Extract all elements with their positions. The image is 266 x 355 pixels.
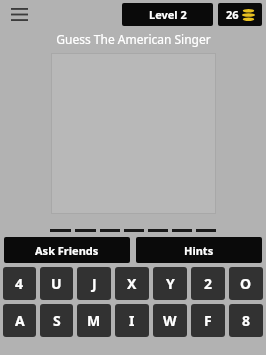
staticText: O xyxy=(240,274,252,293)
button[interactable]: A xyxy=(3,304,36,337)
button[interactable]: S xyxy=(40,304,73,337)
staticText: Level 2 xyxy=(149,7,187,22)
button[interactable]: 2 xyxy=(191,267,225,300)
button[interactable]: Level 2 xyxy=(122,3,213,26)
button[interactable]: Y xyxy=(153,267,187,300)
staticText: X xyxy=(127,274,137,293)
staticText: 2 xyxy=(204,274,213,293)
staticText: M xyxy=(87,311,101,330)
staticText: Guess The American Singer xyxy=(56,31,211,47)
staticText: Y xyxy=(166,274,175,293)
staticText: F xyxy=(204,311,212,330)
staticText: S xyxy=(53,311,61,330)
staticText: 26 xyxy=(226,7,239,22)
staticText: I xyxy=(129,311,135,330)
button[interactable]: I xyxy=(115,304,149,337)
button[interactable]: F xyxy=(191,304,225,337)
staticText: 4 xyxy=(15,274,24,293)
staticText: Hints xyxy=(184,243,214,258)
button[interactable]: Menu xyxy=(6,1,32,27)
staticText: U xyxy=(51,274,62,293)
staticText: W xyxy=(163,311,177,330)
button[interactable]: W xyxy=(153,304,187,337)
button[interactable]: 8 xyxy=(229,304,263,337)
staticText: Ask Friends xyxy=(35,243,99,258)
staticText: 8 xyxy=(242,311,251,330)
button[interactable]: 4 xyxy=(3,267,36,300)
button[interactable]: J xyxy=(77,267,111,300)
button[interactable]: U xyxy=(40,267,73,300)
staticText: A xyxy=(15,311,25,330)
button[interactable]: Ask Friends xyxy=(4,237,130,263)
button[interactable]: Hints xyxy=(136,237,262,263)
button[interactable]: M xyxy=(77,304,111,337)
staticText: J xyxy=(92,274,97,293)
button[interactable]: 26 xyxy=(218,3,262,26)
button[interactable]: X xyxy=(115,267,149,300)
button[interactable]: O xyxy=(229,267,263,300)
